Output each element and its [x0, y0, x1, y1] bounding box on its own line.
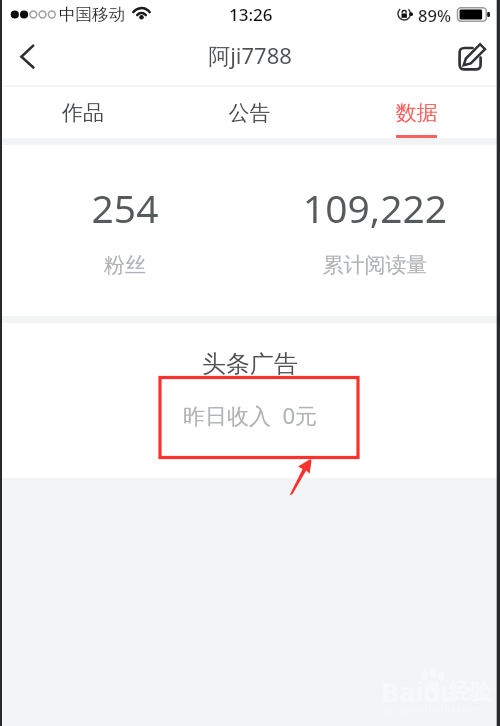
button[interactable]: 作品	[0, 87, 166, 138]
staticText: 89%	[418, 4, 451, 26]
button[interactable]: Back	[0, 33, 48, 81]
staticText: 13:26	[229, 3, 273, 26]
staticText: 109,222	[250, 181, 500, 234]
staticText: 公告	[166, 100, 333, 126]
staticText: 中国移动	[59, 4, 125, 25]
staticText: 累计阅读量	[250, 252, 500, 278]
button[interactable]: Edit profile	[454, 34, 500, 80]
staticText: 阿ji7788	[0, 40, 500, 70]
staticText: 粉丝	[0, 252, 250, 278]
button[interactable]: 公告	[166, 87, 333, 138]
staticText: 作品	[0, 100, 166, 126]
staticText: 头条广告	[0, 349, 500, 379]
button[interactable]: 数据	[333, 87, 500, 138]
staticText: 数据	[333, 100, 500, 126]
staticText: 昨日收入 0元	[183, 400, 318, 430]
staticText: 254	[0, 181, 250, 234]
